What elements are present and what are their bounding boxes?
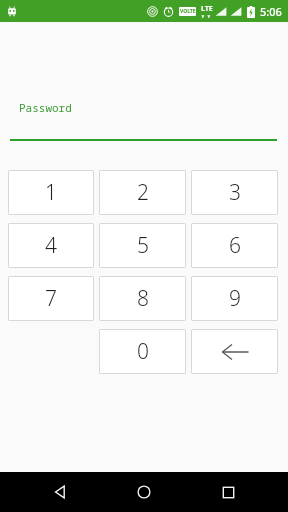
button[interactable]: 1 [8, 170, 94, 215]
button[interactable]: Backspace [191, 329, 278, 374]
staticText: VOLTE [180, 8, 196, 15]
button[interactable]: 8 [99, 276, 186, 321]
button[interactable]: 2 [99, 170, 186, 215]
staticText: 1 [45, 178, 57, 207]
staticText: 7 [45, 284, 57, 313]
button[interactable]: 3 [191, 170, 278, 215]
staticText: LTE [201, 4, 213, 14]
button[interactable]: Back [36, 472, 84, 512]
button[interactable]: Recent apps [204, 472, 252, 512]
staticText: 5:06 [260, 4, 282, 19]
button[interactable]: 9 [191, 276, 278, 321]
button[interactable]: 4 [8, 223, 94, 268]
staticText: Password [19, 100, 72, 115]
staticText: 3 [229, 178, 241, 207]
staticText: 5 [137, 231, 149, 260]
button[interactable]: 6 [191, 223, 278, 268]
staticText: 2 [137, 178, 149, 207]
staticText: 6 [229, 231, 241, 260]
button[interactable]: 0 [99, 329, 186, 374]
staticText: 4 [45, 231, 57, 260]
staticText: 9 [229, 284, 241, 313]
staticText: 8 [137, 284, 149, 313]
button[interactable]: Home [120, 472, 168, 512]
button[interactable]: 5 [99, 223, 186, 268]
staticText: 0 [137, 337, 149, 366]
button[interactable]: 7 [8, 276, 94, 321]
